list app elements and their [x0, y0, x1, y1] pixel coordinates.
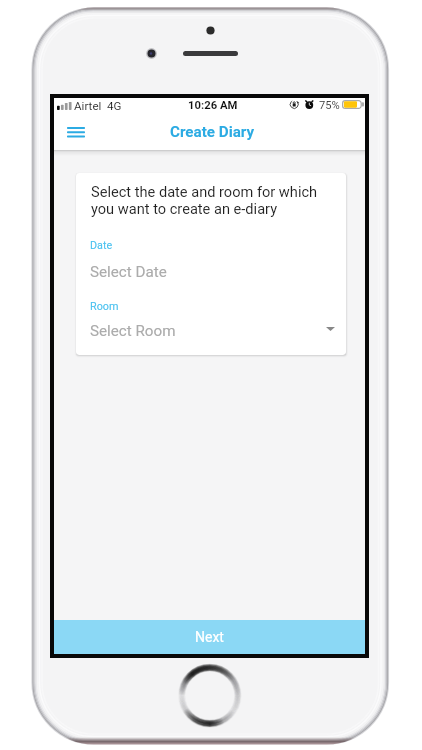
staticText: Select the date and room for which you w…: [91, 183, 323, 218]
staticText: Select Room: [90, 322, 176, 340]
button[interactable]: Open navigation menu: [59, 115, 93, 149]
button[interactable]: Next: [54, 620, 365, 654]
staticText: 10:26 AM: [188, 99, 238, 112]
staticText: Date: [90, 239, 113, 252]
staticText: Airtel: [74, 99, 102, 113]
button[interactable]: Select Room: [76, 318, 346, 344]
staticText: 4G: [107, 99, 122, 113]
button[interactable]: Select Date: [76, 259, 346, 285]
staticText: 75%: [319, 99, 340, 112]
staticText: Next: [195, 629, 224, 645]
staticText: Select Date: [90, 263, 167, 281]
staticText: Create Diary: [170, 123, 255, 141]
staticText: Room: [90, 300, 119, 313]
